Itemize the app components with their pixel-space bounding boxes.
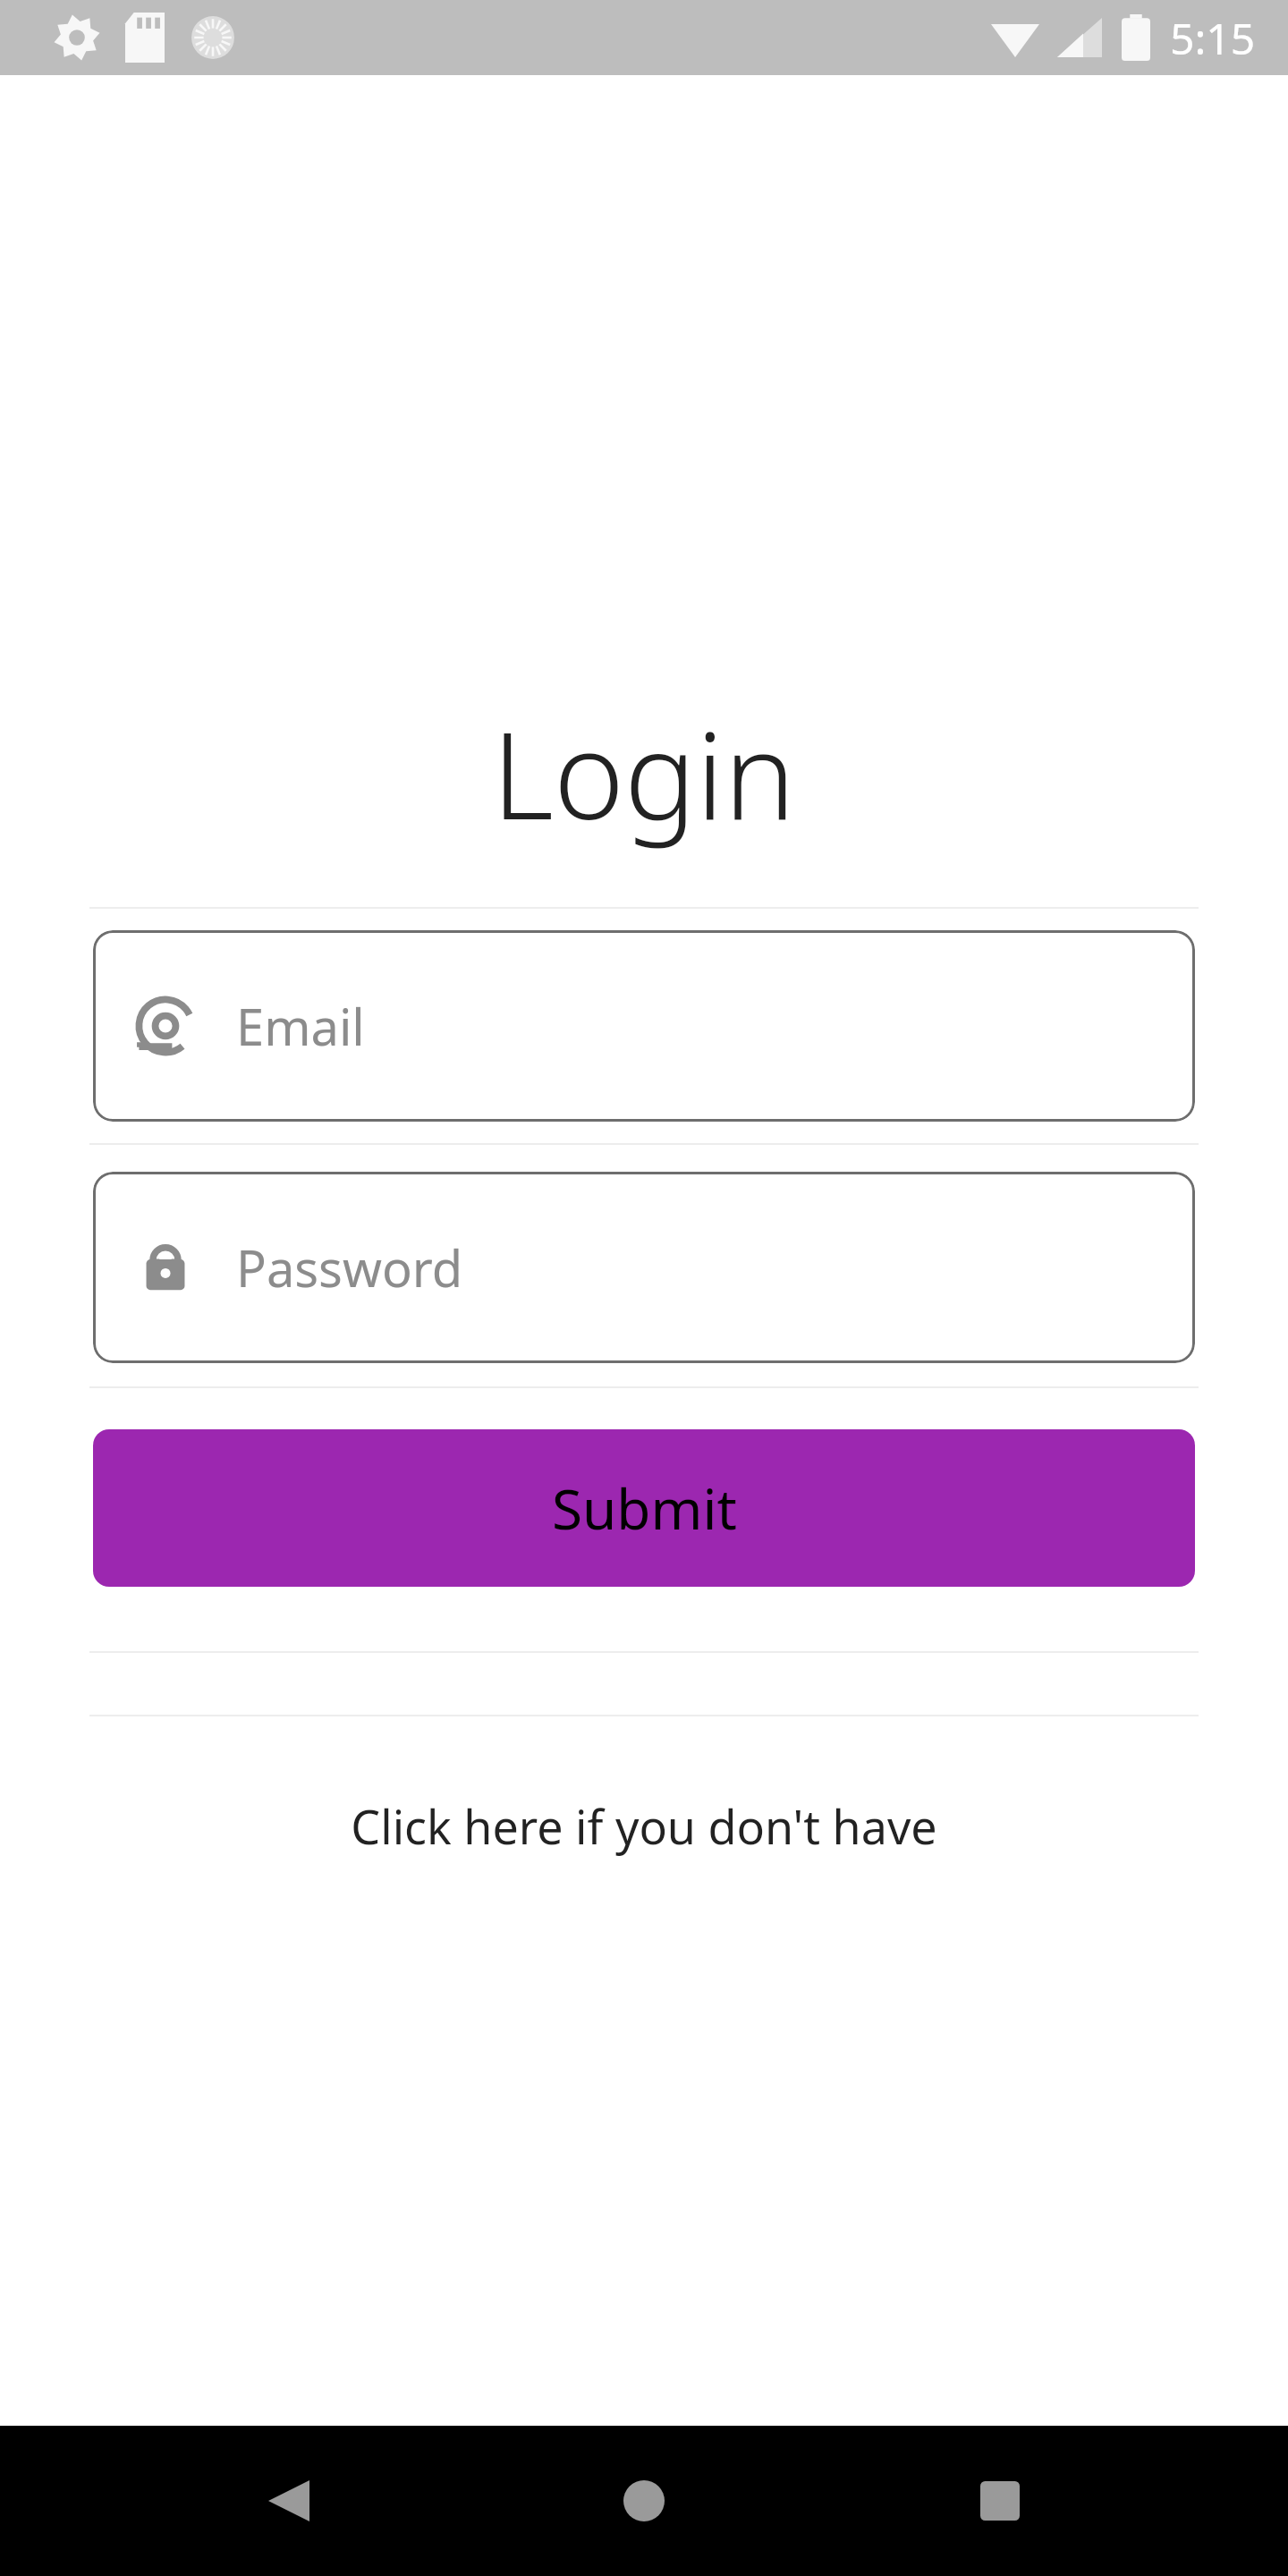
button[interactable]: Click here if you don't have: [0, 1772, 1288, 1879]
staticText: Login: [492, 691, 796, 855]
staticText: Submit: [552, 1470, 737, 1546]
button[interactable]: Back: [222, 2434, 356, 2568]
staticText: Email: [236, 992, 365, 1060]
staticText: 5:15: [1170, 9, 1256, 67]
button[interactable]: Password: [93, 1172, 1195, 1363]
staticText: Password: [236, 1233, 463, 1301]
button[interactable]: Email: [93, 930, 1195, 1122]
staticText: Click here if you don't have: [351, 1794, 937, 1858]
button[interactable]: Home: [577, 2434, 711, 2568]
button[interactable]: Recent apps: [933, 2434, 1067, 2568]
button[interactable]: Submit: [93, 1429, 1195, 1587]
